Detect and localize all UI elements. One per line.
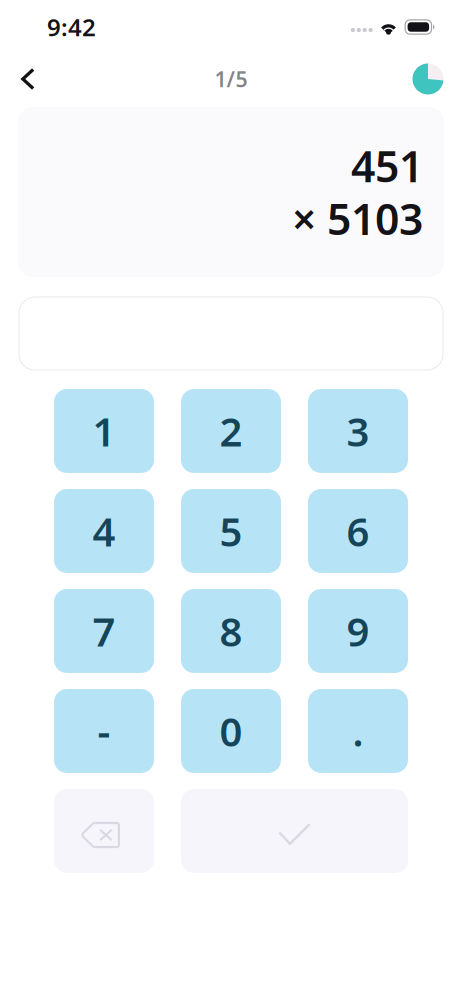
button[interactable]: . bbox=[308, 689, 408, 773]
button[interactable]: 4 bbox=[54, 489, 154, 573]
staticText: 8 bbox=[219, 604, 242, 657]
button[interactable]: 3 bbox=[308, 389, 408, 473]
staticText: 0 bbox=[219, 704, 242, 757]
staticText: 9:42 bbox=[47, 11, 96, 43]
staticText: 7 bbox=[92, 604, 115, 657]
button[interactable]: 9 bbox=[308, 589, 408, 673]
button[interactable]: 2 bbox=[181, 389, 281, 473]
button[interactable]: 5 bbox=[181, 489, 281, 573]
staticText: 5 bbox=[219, 504, 242, 557]
staticText: × 5103 bbox=[292, 190, 423, 247]
staticText: 1 bbox=[92, 404, 115, 457]
button[interactable]: Back bbox=[2, 54, 54, 104]
staticText: 1/5 bbox=[214, 65, 247, 93]
staticText: 4 bbox=[92, 504, 115, 557]
staticText: 451 bbox=[351, 137, 423, 194]
button[interactable]: 7 bbox=[54, 589, 154, 673]
button[interactable]: Delete bbox=[54, 789, 154, 873]
staticText: 3 bbox=[346, 404, 369, 457]
button[interactable]: - bbox=[54, 689, 154, 773]
staticText: 2 bbox=[219, 404, 242, 457]
button[interactable]: 0 bbox=[181, 689, 281, 773]
button[interactable]: Progress: 1 of 5 bbox=[402, 54, 454, 104]
button[interactable]: 8 bbox=[181, 589, 281, 673]
button[interactable]: 6 bbox=[308, 489, 408, 573]
button[interactable]: 1 bbox=[54, 389, 154, 473]
staticText: . bbox=[352, 704, 363, 757]
staticText: - bbox=[97, 704, 110, 757]
staticText: 9 bbox=[346, 604, 369, 657]
staticText: 6 bbox=[346, 504, 369, 557]
